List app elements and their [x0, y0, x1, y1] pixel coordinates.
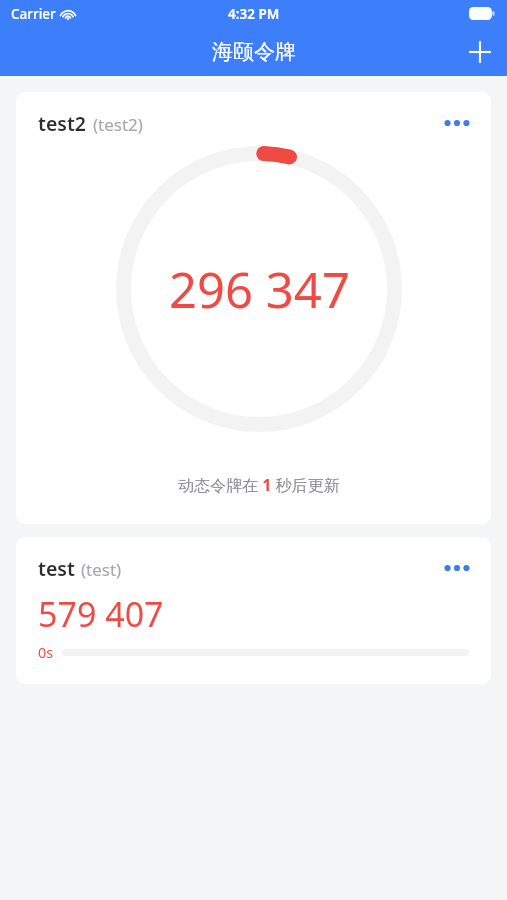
button[interactable]: More options	[435, 106, 479, 140]
button[interactable]: test	[16, 537, 491, 684]
staticText: (test)	[81, 558, 122, 581]
staticText: (test2)	[93, 113, 143, 136]
staticText: 海颐令牌	[212, 39, 296, 65]
staticText: Carrier	[11, 5, 56, 23]
staticText: 579 407	[38, 591, 164, 637]
staticText: 动态令牌在 1 秒后更新	[178, 474, 340, 496]
staticText: test	[38, 555, 75, 582]
staticText: 296 347	[169, 256, 350, 323]
staticText: test2	[38, 110, 87, 137]
button[interactable]: test2	[16, 92, 491, 524]
staticText: 4:32 PM	[228, 5, 280, 23]
button[interactable]: More options	[435, 551, 479, 585]
staticText: 0s	[38, 642, 54, 662]
button[interactable]: Add token	[453, 27, 507, 76]
